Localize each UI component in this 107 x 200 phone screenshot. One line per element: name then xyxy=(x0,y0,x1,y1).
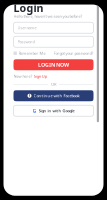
staticText: New here? xyxy=(13,74,32,79)
staticText: f xyxy=(28,93,30,98)
staticText: Remember Me xyxy=(18,51,45,56)
button[interactable]: Sign Up xyxy=(34,74,47,79)
staticText: Sign in with Google xyxy=(38,108,74,113)
staticText: Sign Up xyxy=(34,74,47,79)
staticText: Forgot your password? xyxy=(53,51,93,56)
staticText: Username xyxy=(17,25,36,30)
button[interactable]: Remember Me xyxy=(13,51,45,56)
staticText: Hello there, haven't we seen you before? xyxy=(13,14,82,19)
staticText: Login xyxy=(13,1,43,15)
button[interactable]: G xyxy=(13,105,93,116)
staticText: G xyxy=(32,107,36,114)
staticText: Continue with Facebook xyxy=(33,93,79,98)
button[interactable] xyxy=(3,195,103,200)
button[interactable]: Forgot your password? xyxy=(53,51,93,56)
button[interactable]: f xyxy=(13,90,93,101)
staticText: LOGIN NOW xyxy=(38,61,69,68)
button[interactable]: LOGIN NOW xyxy=(13,59,93,70)
staticText: OR xyxy=(51,82,56,87)
staticText: Password xyxy=(17,39,34,44)
